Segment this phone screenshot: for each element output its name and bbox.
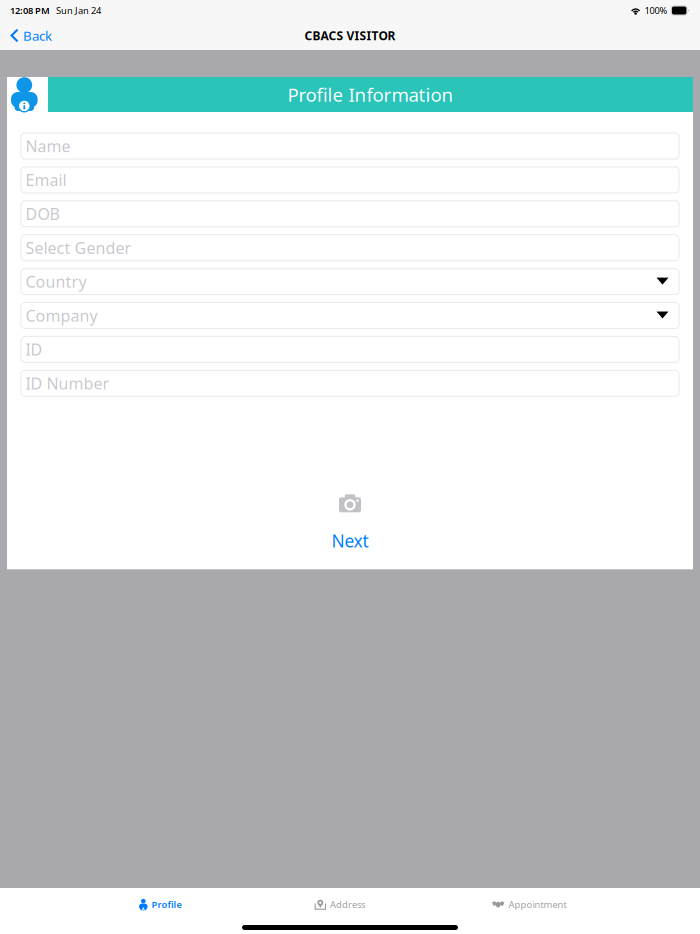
button[interactable]: Select Gender (21, 235, 679, 261)
button[interactable]: Name (21, 133, 679, 159)
staticText: 100% (645, 4, 668, 17)
staticText: Next (331, 529, 368, 552)
staticText: Country (25, 271, 86, 292)
staticText: Back (23, 27, 52, 44)
button[interactable]: DOB (21, 201, 679, 227)
staticText: ID (25, 339, 42, 360)
staticText: ID Number (25, 373, 109, 394)
staticText: Profile (152, 898, 182, 911)
button[interactable]: Email (21, 167, 679, 193)
button[interactable]: Profile (136, 888, 185, 921)
button[interactable]: Take photo (335, 490, 365, 516)
staticText: DOB (25, 203, 59, 224)
staticText: Name (25, 135, 70, 157)
staticText: Company (25, 305, 97, 326)
button[interactable]: ID Number (21, 370, 679, 396)
button[interactable]: Country (21, 269, 679, 295)
staticText: Address (330, 898, 365, 911)
staticText: Appointment (508, 898, 566, 911)
button[interactable]: Address (312, 888, 368, 921)
staticText: Profile Information (287, 82, 453, 107)
button[interactable]: Back (0, 21, 62, 49)
staticText: Select Gender (25, 237, 131, 258)
staticText: CBACS VISITOR (304, 27, 395, 43)
staticText: 12:08 PM (10, 4, 50, 17)
staticText: Email (25, 169, 66, 190)
button[interactable]: Company (21, 302, 679, 328)
button[interactable]: Next (315, 527, 384, 554)
button[interactable]: ID (21, 336, 679, 362)
button[interactable]: Appointment (489, 888, 569, 921)
staticText: Sun Jan 24 (56, 4, 101, 17)
